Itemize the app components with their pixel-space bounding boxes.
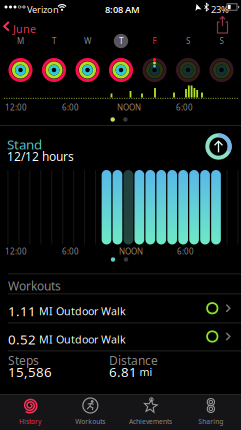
button[interactable]: Share xyxy=(217,16,228,34)
button[interactable]: Workouts xyxy=(60,394,120,430)
staticText: F xyxy=(152,36,156,46)
staticText: 6:00 xyxy=(62,102,79,113)
staticText: 0.52 xyxy=(8,330,36,348)
staticText: T xyxy=(52,36,56,46)
staticText: MI Outdoor Walk xyxy=(39,332,126,346)
staticText: 6:00 xyxy=(177,246,194,257)
staticText: NOON xyxy=(117,102,141,113)
button[interactable]: Sharing xyxy=(181,394,241,430)
staticText: W xyxy=(84,36,91,46)
staticText: Workouts xyxy=(8,278,61,294)
button[interactable]: Tuesday xyxy=(37,33,71,88)
staticText: 23% xyxy=(211,3,229,16)
staticText: 12:00 xyxy=(5,102,27,113)
button[interactable]: Achievements xyxy=(120,394,181,430)
staticText: 15,586 xyxy=(8,363,52,381)
staticText: Workouts xyxy=(75,417,105,426)
staticText: Stand xyxy=(7,135,42,153)
button[interactable]: Back xyxy=(0,14,42,36)
staticText: Achievements xyxy=(129,417,172,426)
staticText: NOON xyxy=(119,246,143,257)
button[interactable]: Wednesday xyxy=(71,33,104,88)
staticText: 1.11 xyxy=(8,302,36,320)
button[interactable]: Monday xyxy=(4,33,37,88)
staticText: mi xyxy=(139,365,152,379)
button[interactable]: Scroll up xyxy=(203,131,233,161)
staticText: Distance xyxy=(109,352,158,368)
staticText: 8:08 AM xyxy=(105,3,140,16)
staticText: MI Outdoor Walk xyxy=(39,304,126,318)
button[interactable]: 1.11 xyxy=(0,294,241,322)
staticText: S xyxy=(186,36,190,46)
staticText: 12:00 xyxy=(5,246,27,257)
staticText: Sharing xyxy=(198,417,223,426)
staticText: M xyxy=(17,36,24,46)
button[interactable]: 0.52 xyxy=(0,322,241,350)
staticText: June xyxy=(13,22,36,36)
button[interactable]: Saturday xyxy=(171,33,205,88)
button[interactable]: History xyxy=(0,394,60,430)
staticText: Verizon xyxy=(27,3,59,16)
staticText: 6:00 xyxy=(62,246,79,257)
staticText: 12/12 xyxy=(7,148,39,164)
staticText: 6.81 xyxy=(109,363,137,381)
button[interactable]: Thursday xyxy=(104,33,138,88)
staticText: History xyxy=(19,417,41,426)
staticText: hours xyxy=(42,148,74,164)
button[interactable]: Sunday xyxy=(205,33,238,88)
staticText: Steps xyxy=(8,352,39,368)
staticText: S xyxy=(219,36,223,46)
staticText: T xyxy=(119,36,123,46)
button[interactable]: Friday xyxy=(138,33,171,88)
staticText: 6:00 xyxy=(176,102,193,113)
